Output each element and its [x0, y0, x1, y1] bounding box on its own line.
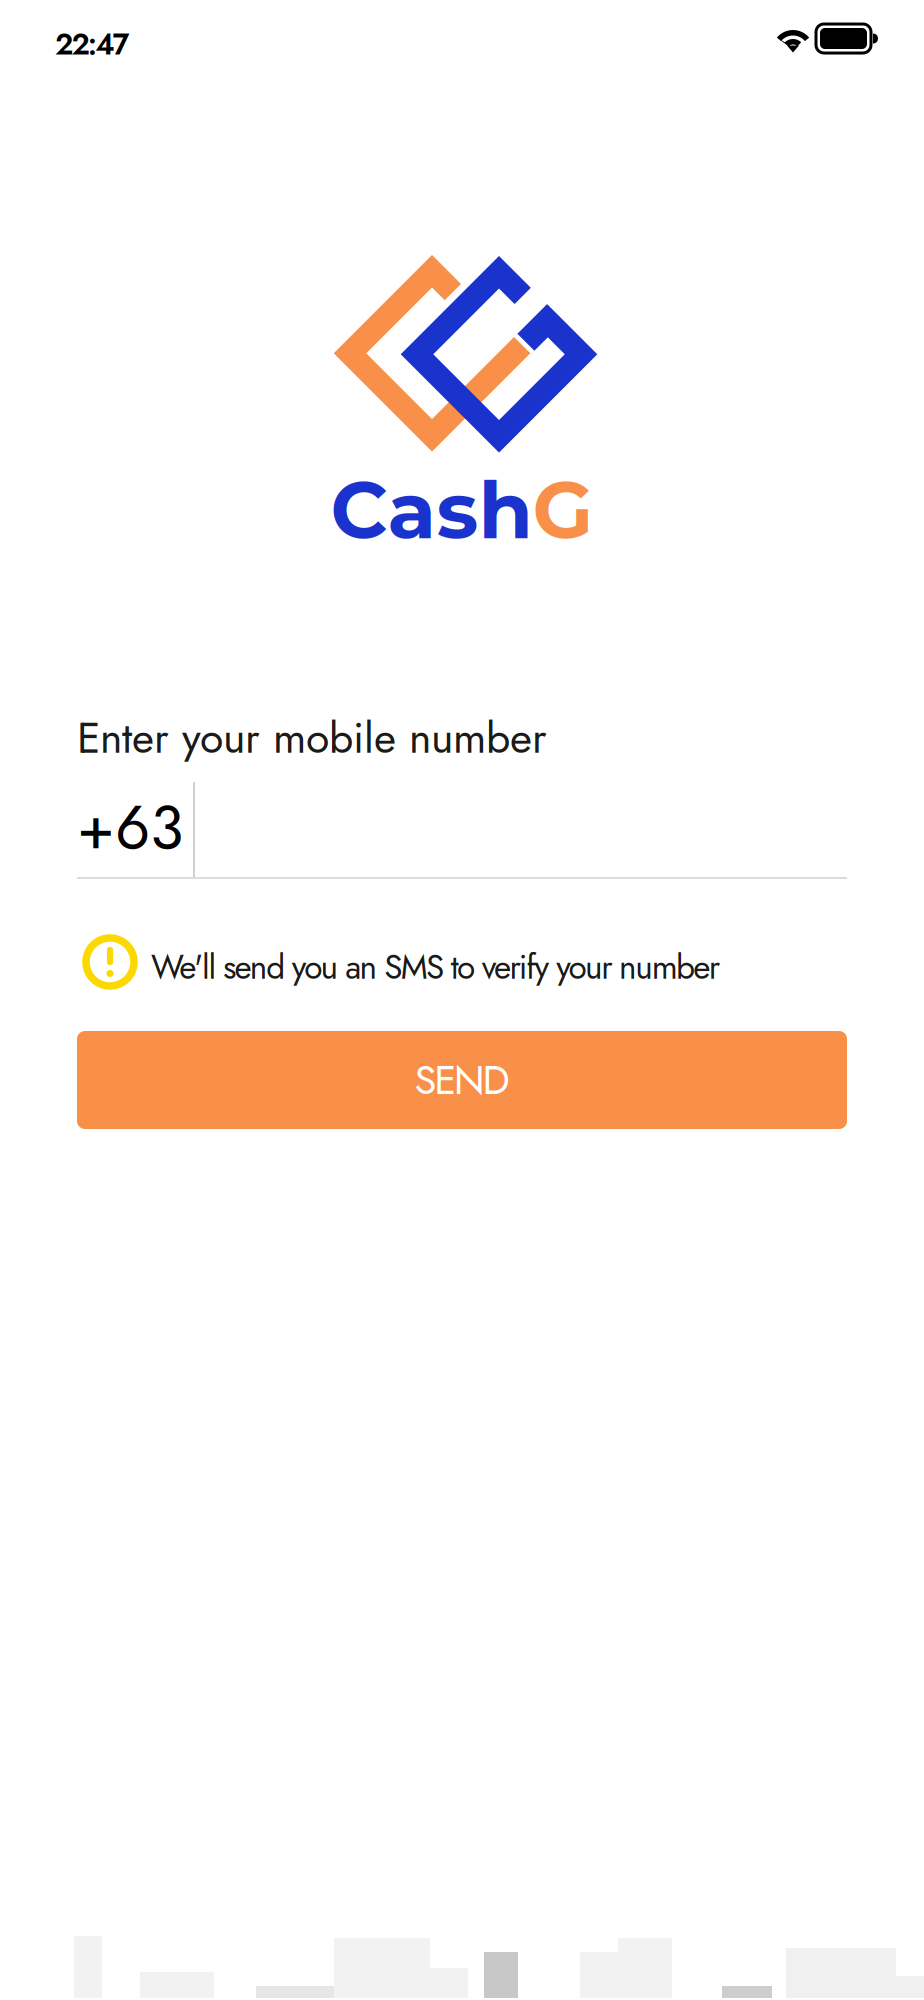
- staticText: Cash: [330, 462, 532, 558]
- staticText: +63: [77, 783, 183, 872]
- staticText: 22:47: [55, 23, 130, 65]
- staticText: G: [532, 462, 593, 558]
- staticText: SEND: [415, 1051, 509, 1109]
- staticText: Enter your mobile number: [77, 707, 547, 769]
- staticText: We'll send you an SMS to verify your num…: [151, 943, 720, 991]
- button[interactable]: SEND: [77, 1031, 847, 1129]
